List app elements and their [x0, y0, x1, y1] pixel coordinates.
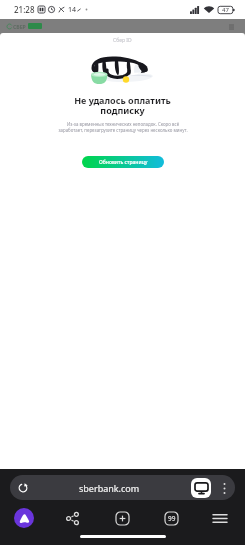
button[interactable]: Обновить страницу [82, 156, 164, 168]
staticText: Из-за временных технических неполадок. С… [57, 121, 189, 133]
button[interactable]: Alice assistant [14, 508, 34, 528]
button[interactable]: Reload [10, 475, 235, 500]
staticText: Сбер ID [113, 37, 132, 44]
button[interactable]: Tabs [160, 507, 182, 529]
staticText: 99 [168, 514, 176, 523]
staticText: 47 [222, 6, 229, 14]
button[interactable]: Share [61, 507, 83, 529]
button[interactable]: Desktop version [191, 478, 211, 498]
staticText: СБЕР [13, 23, 26, 30]
button[interactable]: More options [217, 481, 231, 495]
button[interactable]: New tab [111, 507, 133, 529]
staticText: Не удалось оплатить подписку [74, 94, 171, 116]
staticText: 21:28 [14, 4, 35, 15]
staticText: Обновить страницу [99, 159, 148, 166]
button[interactable]: Tab menu [227, 22, 236, 31]
staticText: sberbank.com [79, 482, 140, 494]
staticText: 14 [68, 5, 77, 15]
other: Reload [18, 483, 28, 493]
button[interactable]: Menu [209, 507, 231, 529]
